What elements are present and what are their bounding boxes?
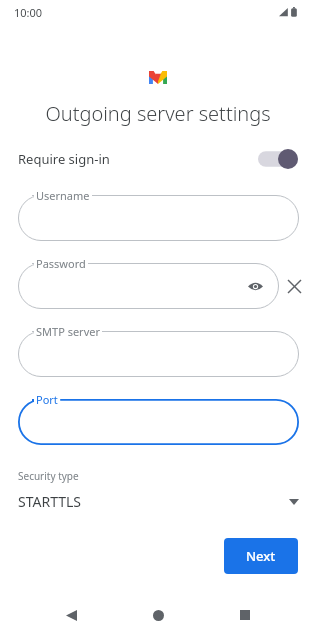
- button[interactable]: Home: [142, 599, 174, 631]
- staticText: SMTP server: [36, 324, 100, 339]
- button[interactable]: SMTP server: [18, 331, 299, 377]
- button[interactable]: Next: [224, 538, 298, 574]
- staticText: Security type: [18, 469, 79, 483]
- button[interactable]: Password: [18, 263, 279, 309]
- button[interactable]: Recent apps: [229, 599, 261, 631]
- button[interactable]: Back: [55, 599, 87, 631]
- button[interactable]: Port: [18, 399, 299, 445]
- staticText: Next: [246, 547, 276, 565]
- staticText: Outgoing server settings: [10, 100, 306, 127]
- staticText: Password: [36, 256, 86, 271]
- staticText: 10:00: [14, 5, 43, 20]
- staticText: Port: [36, 392, 58, 407]
- button[interactable]: Require sign-in: [0, 145, 316, 173]
- button[interactable]: Show password: [244, 275, 266, 297]
- staticText: Username: [36, 188, 90, 203]
- other: Require sign-in toggle: [258, 149, 298, 169]
- staticText: Require sign-in: [18, 150, 110, 168]
- button[interactable]: Username: [18, 195, 299, 241]
- button[interactable]: Security type: [0, 469, 316, 511]
- button[interactable]: Clear password: [279, 271, 309, 301]
- staticText: STARTTLS: [18, 492, 82, 511]
